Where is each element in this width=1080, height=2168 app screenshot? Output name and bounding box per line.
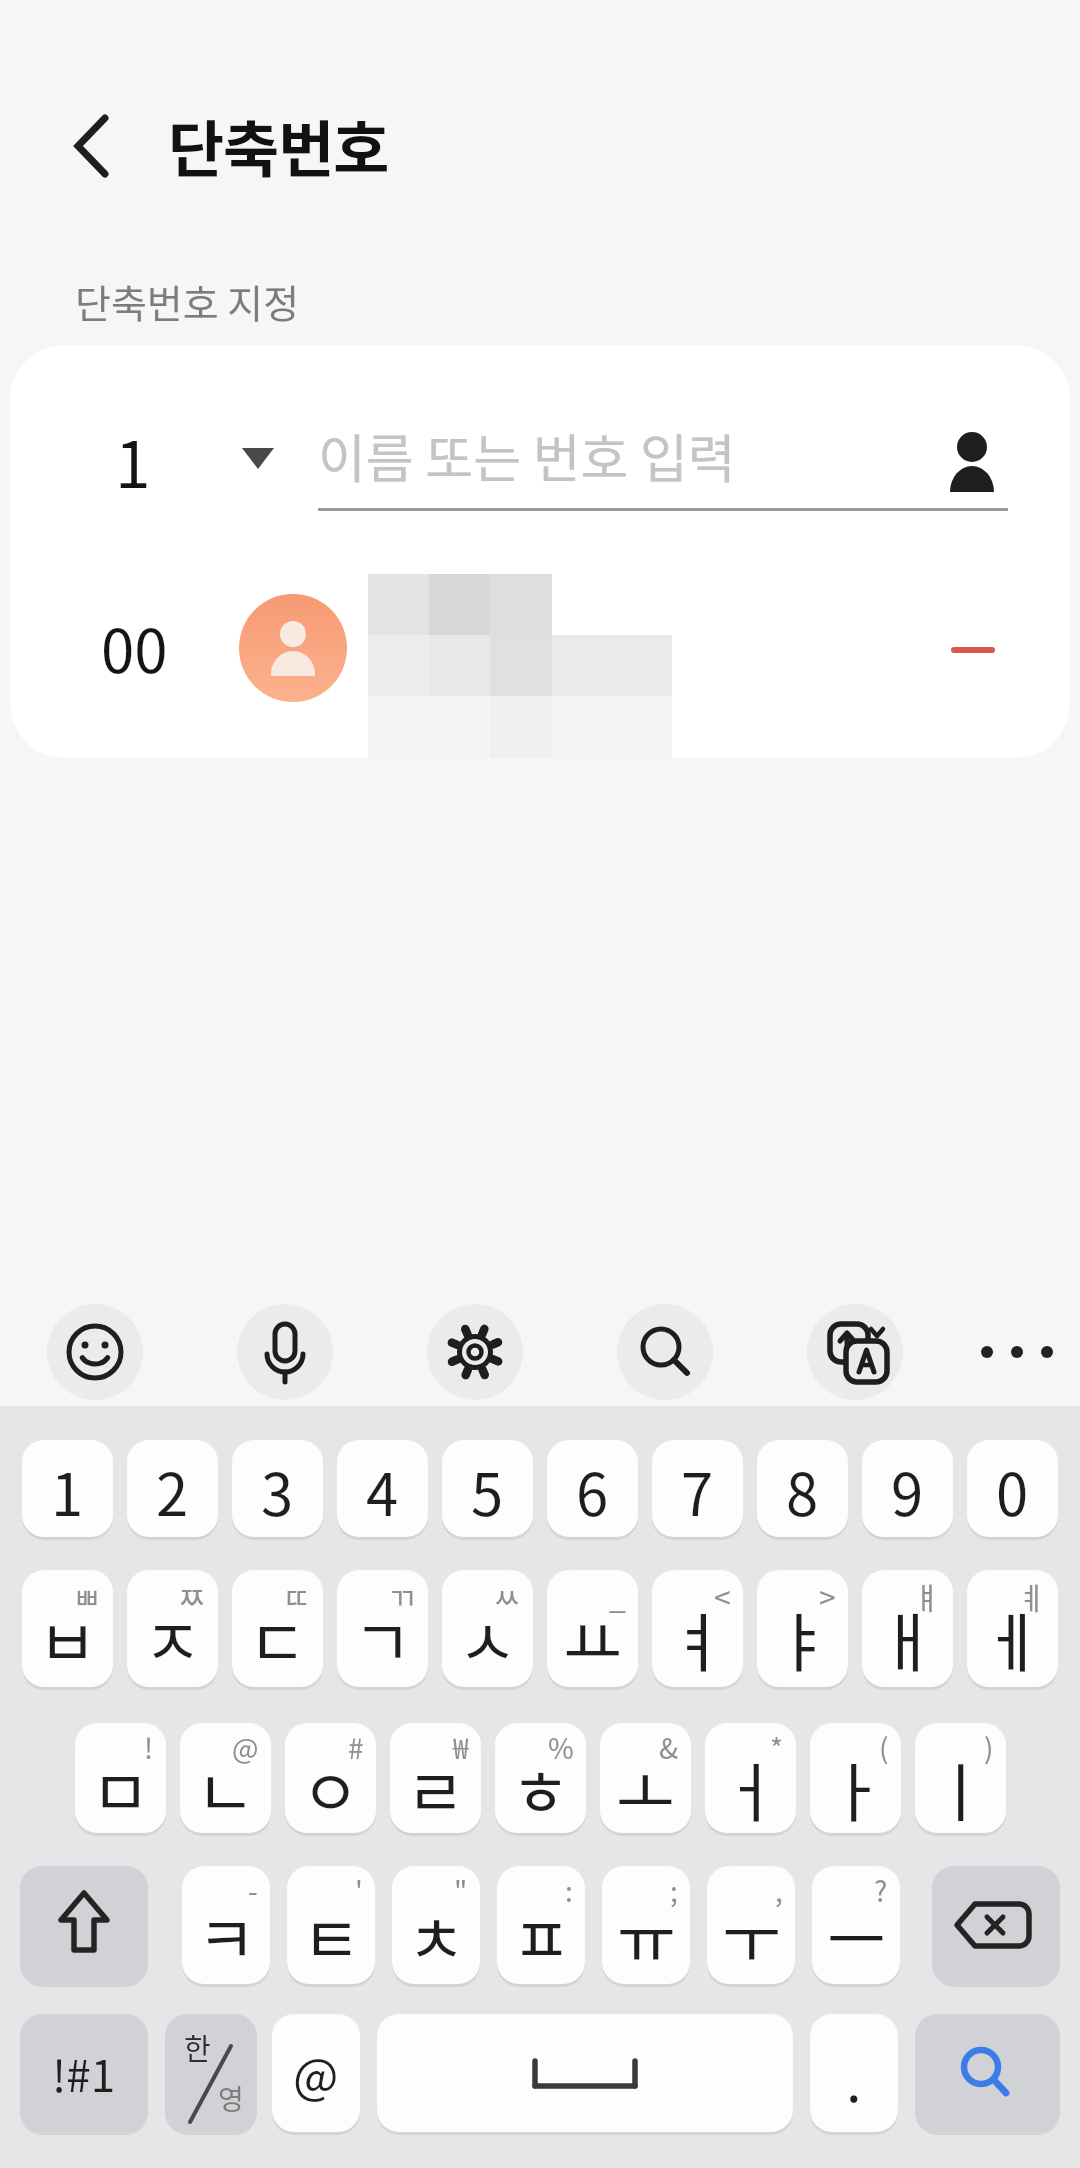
button[interactable]: . (810, 2014, 898, 2132)
button[interactable]: ㅍ (497, 1866, 585, 1984)
staticText: ㅉ (178, 1574, 206, 1617)
staticText: @ (232, 1727, 259, 1768)
staticText: ㅊ (407, 1889, 466, 1982)
staticText: ㄲ (388, 1574, 416, 1617)
button[interactable]: 2 (127, 1440, 218, 1537)
button[interactable]: ㅕ (652, 1570, 743, 1687)
button[interactable] (930, 420, 1010, 510)
button[interactable] (932, 1866, 1060, 1984)
button[interactable]: ㅁ (75, 1723, 166, 1833)
button[interactable]: ㅊ (392, 1866, 480, 1984)
button[interactable] (427, 1304, 523, 1400)
button[interactable] (807, 1304, 903, 1400)
staticText: 5 (471, 1449, 504, 1533)
button[interactable]: 6 (547, 1440, 638, 1537)
button[interactable]: ㅔ (967, 1570, 1058, 1687)
staticText: ㅖ (1018, 1574, 1046, 1617)
button[interactable] (95, 415, 295, 535)
staticText: 2 (156, 1449, 189, 1533)
staticText: ㅋ (197, 1889, 256, 1982)
button[interactable]: 0 (967, 1440, 1058, 1537)
button[interactable]: ㅡ (812, 1866, 900, 1984)
staticText: ₩ (453, 1727, 469, 1768)
button[interactable] (975, 1328, 1060, 1376)
button[interactable]: ㅂ (22, 1570, 113, 1687)
staticText: ㅃ (73, 1574, 101, 1617)
button[interactable]: @ (272, 2014, 360, 2132)
button[interactable] (925, 595, 1020, 705)
staticText: 한 (184, 2026, 211, 2066)
button[interactable]: ㄴ (180, 1723, 271, 1833)
button[interactable] (47, 1304, 143, 1400)
staticText: 3 (261, 1449, 294, 1533)
button[interactable] (10, 545, 1070, 758)
button[interactable] (915, 2014, 1060, 2132)
button[interactable]: 8 (757, 1440, 848, 1537)
button[interactable]: ㅇ (285, 1723, 376, 1833)
staticText: ) (984, 1727, 994, 1768)
button[interactable]: ㄹ (390, 1723, 481, 1833)
staticText: _ (609, 1574, 626, 1617)
button[interactable]: ㅅ (442, 1570, 533, 1687)
staticText: 0 (996, 1449, 1029, 1533)
staticText: " (454, 1870, 468, 1911)
staticText: 단축번호 지정 (75, 273, 300, 329)
button[interactable]: ㅑ (757, 1570, 848, 1687)
staticText: 8 (786, 1449, 819, 1533)
button[interactable]: ㄷ (232, 1570, 323, 1687)
button[interactable]: 5 (442, 1440, 533, 1537)
staticText: ? (874, 1870, 888, 1911)
button[interactable]: ㅜ (707, 1866, 795, 1984)
staticText: ㅏ (826, 1742, 885, 1833)
staticText: ! (144, 1727, 154, 1768)
button[interactable] (377, 2014, 793, 2132)
staticText: ㅕ (668, 1592, 727, 1685)
button[interactable]: ㅣ (915, 1723, 1006, 1833)
staticText: !#1 (52, 2041, 116, 2105)
staticText: @ (293, 2038, 339, 2108)
staticText: 단축번호 (168, 101, 389, 189)
staticText: 이름 또는 번호 입력 (318, 418, 736, 493)
staticText: 7 (681, 1449, 714, 1533)
staticText: 1 (51, 1449, 84, 1533)
staticText: ㅛ (563, 1592, 622, 1685)
staticText: - (248, 1870, 258, 1911)
button[interactable]: ㅛ (547, 1570, 638, 1687)
button[interactable]: 3 (232, 1440, 323, 1537)
button[interactable]: 7 (652, 1440, 743, 1537)
staticText: % (548, 1727, 574, 1768)
staticText: ㄱ (353, 1592, 412, 1685)
staticText: 1 (115, 414, 151, 507)
staticText: : (565, 1870, 573, 1911)
button[interactable]: !#1 (20, 2014, 148, 2132)
staticText: & (659, 1727, 679, 1768)
button[interactable] (237, 1304, 333, 1400)
staticText: ㅎ (511, 1742, 570, 1833)
button[interactable]: ㅏ (810, 1723, 901, 1833)
button[interactable]: ㅐ (862, 1570, 953, 1687)
staticText: ㅗ (616, 1742, 675, 1833)
button[interactable]: 4 (337, 1440, 428, 1537)
button[interactable]: ㅌ (287, 1866, 375, 1984)
staticText: # (348, 1727, 364, 1768)
button[interactable] (617, 1304, 713, 1400)
staticText: < (714, 1574, 731, 1617)
button[interactable]: ㅗ (600, 1723, 691, 1833)
button[interactable] (60, 105, 130, 185)
staticText: ㅅ (458, 1592, 517, 1685)
button[interactable]: 1 (22, 1440, 113, 1537)
button[interactable]: ㅎ (495, 1723, 586, 1833)
staticText: > (819, 1574, 836, 1617)
button[interactable]: ㄱ (337, 1570, 428, 1687)
button[interactable]: ㅓ (705, 1723, 796, 1833)
button[interactable]: 9 (862, 1440, 953, 1537)
button[interactable]: 한 (165, 2014, 257, 2132)
button[interactable]: ㅠ (602, 1866, 690, 1984)
staticText: 9 (891, 1449, 924, 1533)
staticText: ㅓ (721, 1742, 780, 1833)
staticText: . (846, 2037, 862, 2118)
staticText: ㅂ (38, 1592, 97, 1685)
button[interactable]: ㅋ (182, 1866, 270, 1984)
button[interactable] (20, 1866, 148, 1984)
button[interactable]: ㅈ (127, 1570, 218, 1687)
